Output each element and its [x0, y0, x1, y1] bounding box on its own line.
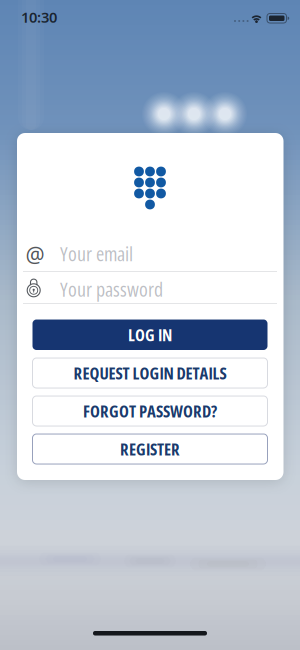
staticText: Your password	[60, 275, 163, 303]
staticText: Your email	[60, 240, 133, 267]
staticText: @	[25, 240, 44, 269]
button[interactable]: LOG IN	[32, 319, 267, 350]
staticText: FORGOT PASSWORD?	[83, 400, 217, 422]
button[interactable]: @	[23, 239, 277, 271]
staticText: LOG IN	[128, 323, 172, 346]
button[interactable]: FORGOT PASSWORD?	[32, 396, 267, 426]
button[interactable]: Your password	[23, 272, 277, 303]
button[interactable]: REQUEST LOGIN DETAILS	[32, 358, 267, 388]
staticText: REGISTER	[120, 438, 180, 460]
staticText: REQUEST LOGIN DETAILS	[73, 362, 226, 384]
staticText: 10:30	[21, 7, 57, 27]
button[interactable]: REGISTER	[32, 434, 267, 464]
